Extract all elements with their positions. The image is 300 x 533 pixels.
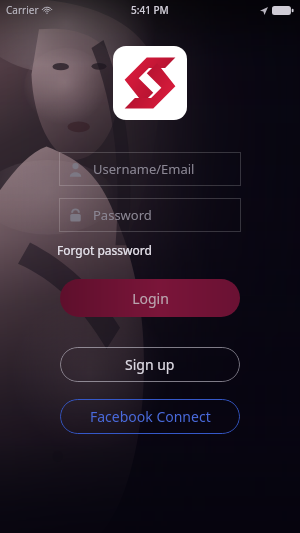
staticText: Login: [132, 289, 169, 308]
staticText: Sign up: [125, 355, 175, 374]
button[interactable]: Login: [60, 279, 240, 317]
staticText: 5:41 PM: [131, 3, 169, 17]
button[interactable]: Facebook Connect: [60, 399, 240, 434]
button[interactable]: Username/Email: [59, 152, 241, 186]
staticText: Carrier: [6, 3, 39, 17]
staticText: Password: [93, 206, 152, 224]
button[interactable]: Sign up: [60, 347, 240, 382]
button[interactable]: Forgot password: [57, 241, 152, 259]
button[interactable]: Password: [59, 198, 241, 232]
staticText: Forgot password: [57, 242, 152, 258]
other: App logo: [123, 56, 177, 110]
staticText: Username/Email: [93, 160, 195, 178]
staticText: Facebook Connect: [90, 407, 211, 426]
